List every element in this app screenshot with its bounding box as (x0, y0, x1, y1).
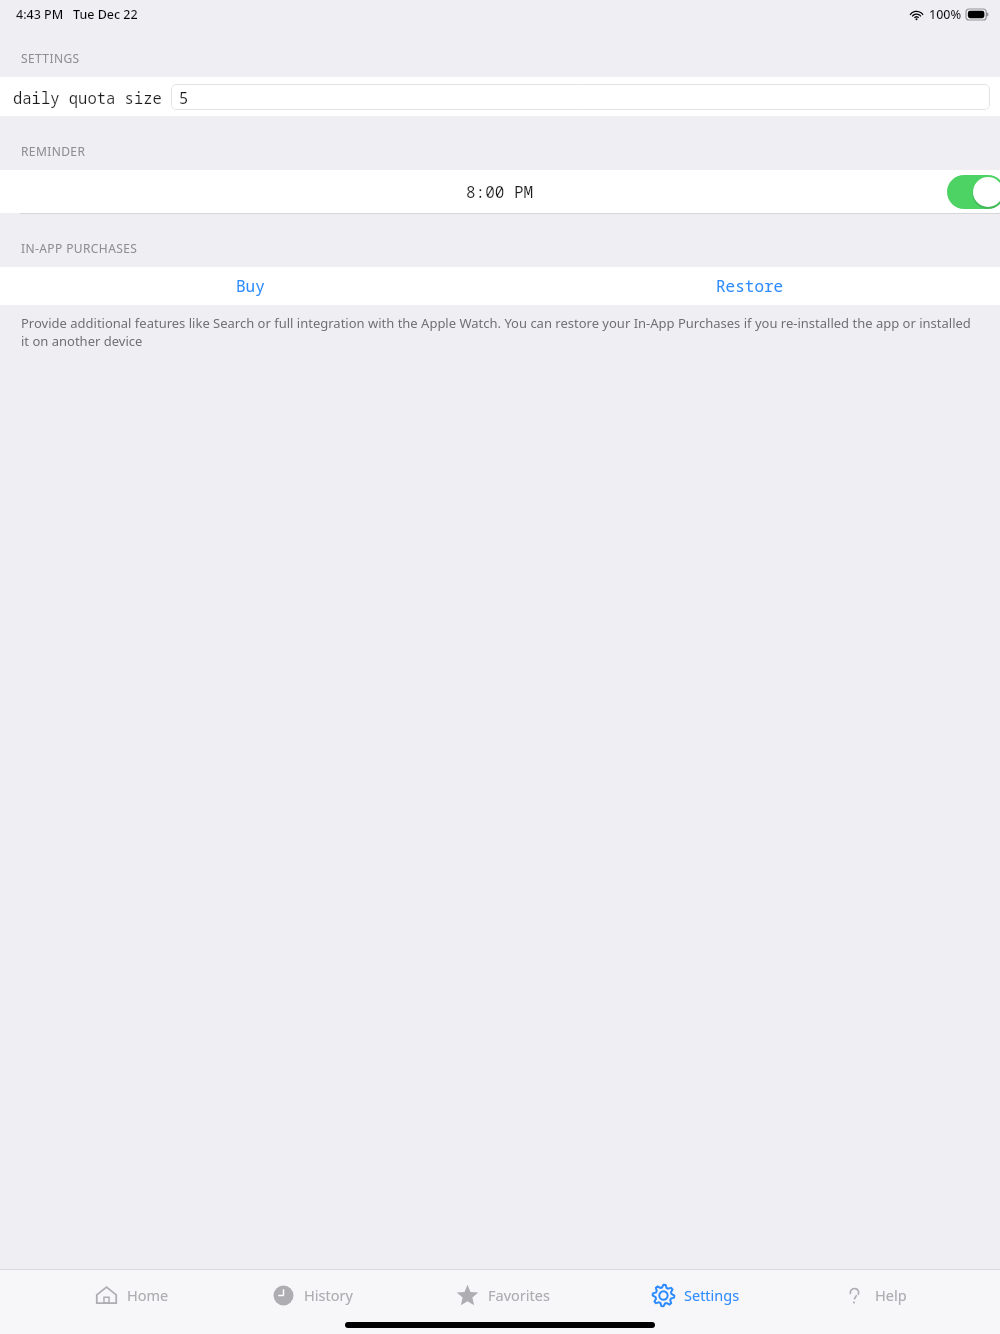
staticText: REMINDER (21, 143, 86, 159)
button[interactable]: Settings (642, 1270, 748, 1320)
button[interactable]: History (262, 1270, 361, 1320)
staticText: SETTINGS (21, 50, 80, 66)
button[interactable]: Reminder toggle (945, 175, 1000, 209)
button[interactable]: 5 (171, 84, 990, 110)
button[interactable]: Restore (500, 267, 1000, 305)
staticText: IN-APP PURCHASES (21, 240, 138, 256)
staticText: Home (127, 1285, 169, 1305)
staticText: Settings (684, 1285, 740, 1305)
button[interactable]: Favorites (446, 1270, 558, 1320)
staticText: 8:00 PM (466, 181, 534, 203)
staticText: daily quota size (13, 87, 162, 108)
staticText: History (304, 1285, 353, 1305)
button[interactable]: Home (85, 1270, 177, 1320)
staticText: 4:43 PM (16, 6, 64, 23)
button[interactable]: 8:00 PM (0, 170, 1000, 213)
staticText: 100% (929, 6, 962, 23)
button[interactable]: Buy (0, 267, 500, 305)
staticText: Provide additional features like Search … (21, 314, 974, 350)
staticText: 5 (179, 87, 189, 108)
staticText: Tue Dec 22 (73, 6, 138, 23)
staticText: Buy (236, 275, 265, 297)
button[interactable]: daily quota size (0, 77, 1000, 116)
staticText: Help (875, 1285, 907, 1305)
staticText: Favorites (488, 1285, 550, 1305)
staticText: Restore (716, 275, 784, 297)
button[interactable]: Help (833, 1270, 915, 1320)
